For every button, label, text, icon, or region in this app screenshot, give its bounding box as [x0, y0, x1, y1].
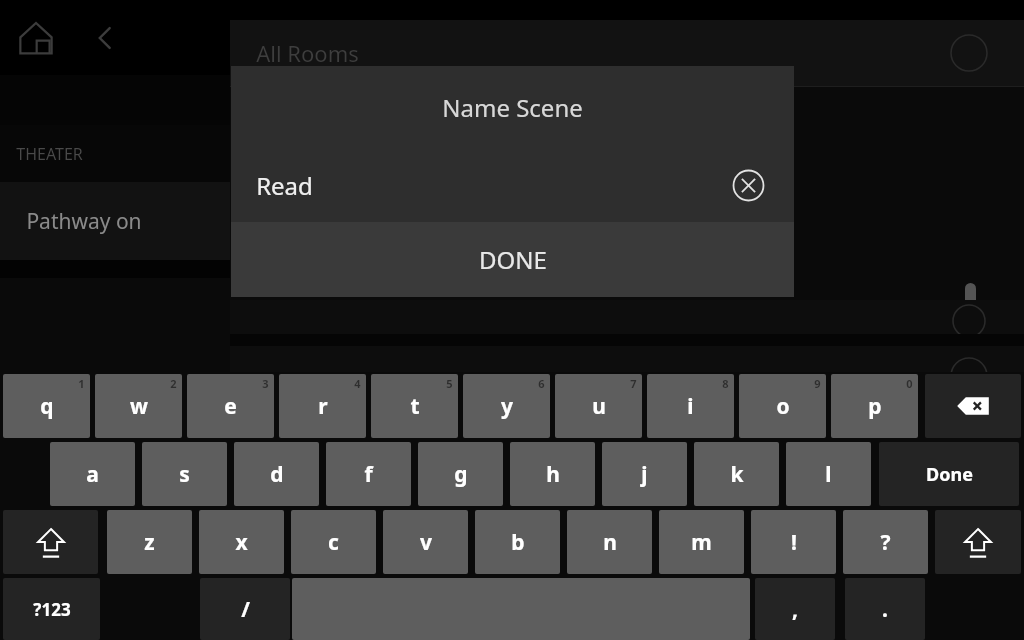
button[interactable]: ,: [755, 578, 835, 640]
staticText: 7: [630, 376, 637, 391]
staticText: w: [130, 392, 148, 421]
button[interactable]: v: [383, 510, 468, 574]
button[interactable]: My Home: [230, 346, 1024, 406]
staticText: 2: [170, 376, 177, 391]
button[interactable]: p: [831, 374, 918, 438]
button[interactable]: m: [659, 510, 744, 574]
button[interactable]: Back: [72, 5, 138, 71]
staticText: h: [546, 460, 560, 489]
staticText: g: [454, 460, 468, 489]
staticText: My Home: [256, 375, 356, 405]
staticText: Read: [256, 169, 313, 202]
button[interactable]: q: [3, 374, 90, 438]
button[interactable]: Pathway on: [0, 182, 230, 260]
button[interactable]: t: [371, 374, 458, 438]
button[interactable]: a: [50, 442, 135, 506]
button[interactable]: y: [463, 374, 550, 438]
button[interactable]: DONE: [231, 222, 794, 297]
staticText: o: [776, 392, 790, 421]
button[interactable]: z: [107, 510, 192, 574]
staticText: n: [603, 528, 617, 557]
staticText: 5: [446, 376, 453, 391]
staticText: DONE: [479, 243, 547, 276]
staticText: All Rooms: [256, 38, 359, 68]
staticText: 0: [906, 376, 913, 391]
staticText: 6: [538, 376, 545, 391]
button[interactable]: l: [786, 442, 871, 506]
button[interactable]: n: [567, 510, 652, 574]
button[interactable]: i: [647, 374, 734, 438]
button[interactable]: Edit: [952, 2, 1024, 74]
button[interactable]: j: [602, 442, 687, 506]
staticText: r: [318, 392, 328, 421]
staticText: j: [641, 460, 648, 489]
staticText: z: [144, 528, 155, 557]
staticText: a: [86, 460, 99, 489]
button[interactable]: Shift: [3, 510, 98, 574]
button[interactable]: ?: [843, 510, 928, 574]
staticText: d: [270, 460, 284, 489]
staticText: s: [179, 460, 190, 489]
staticText: ?123: [33, 598, 71, 621]
staticText: /: [241, 595, 250, 624]
staticText: ,: [792, 595, 798, 624]
button[interactable]: x: [199, 510, 284, 574]
staticText: Pathway on: [26, 207, 142, 236]
staticText: 4: [354, 376, 361, 391]
staticText: Done: [926, 462, 973, 487]
staticText: ?: [880, 528, 891, 557]
button[interactable]: All Rooms: [230, 20, 1024, 86]
staticText: v: [420, 528, 432, 557]
button[interactable]: r: [279, 374, 366, 438]
button[interactable]: o: [739, 374, 826, 438]
staticText: e: [224, 392, 237, 421]
staticText: c: [328, 528, 339, 557]
button[interactable]: g: [418, 442, 503, 506]
button[interactable]: .: [845, 578, 925, 640]
staticText: i: [687, 392, 694, 421]
button[interactable]: w: [95, 374, 182, 438]
staticText: t: [410, 392, 420, 421]
button[interactable]: e: [187, 374, 274, 438]
button[interactable]: c: [291, 510, 376, 574]
button[interactable]: s: [142, 442, 227, 506]
staticText: THEATER: [16, 143, 83, 165]
button[interactable]: Shift: [935, 510, 1021, 574]
staticText: Name Scene: [442, 91, 583, 124]
button[interactable]: k: [694, 442, 779, 506]
staticText: l: [825, 460, 832, 489]
button[interactable]: /: [200, 578, 290, 640]
staticText: k: [730, 460, 744, 489]
staticText: 8: [722, 376, 729, 391]
button[interactable]: h: [510, 442, 595, 506]
staticText: !: [791, 528, 797, 557]
staticText: u: [592, 392, 606, 421]
staticText: x: [235, 528, 248, 557]
staticText: q: [40, 392, 54, 421]
button[interactable]: Settings: [880, 2, 952, 74]
button[interactable]: Backspace: [925, 374, 1021, 438]
staticText: y: [501, 392, 513, 421]
button[interactable]: d: [234, 442, 319, 506]
button[interactable]: Clear text: [726, 163, 770, 207]
button[interactable]: Home: [0, 2, 72, 74]
staticText: b: [511, 528, 525, 557]
staticText: p: [868, 392, 882, 421]
button[interactable]: u: [555, 374, 642, 438]
button[interactable]: ?123: [3, 578, 100, 640]
staticText: m: [691, 528, 712, 557]
button[interactable]: Done: [879, 442, 1019, 506]
button[interactable]: f: [326, 442, 411, 506]
button[interactable]: b: [475, 510, 560, 574]
staticText: 3: [262, 376, 269, 391]
staticText: 9: [814, 376, 821, 391]
staticText: f: [364, 460, 373, 489]
button[interactable]: !: [751, 510, 836, 574]
staticText: .: [882, 595, 888, 624]
staticText: 1: [78, 376, 85, 391]
